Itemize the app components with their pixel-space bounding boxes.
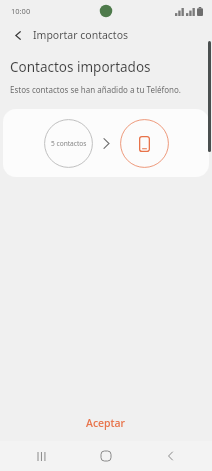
staticText: Estos contactos se han añadido a tu Telé… xyxy=(10,84,181,95)
button[interactable]: 5 contactos xyxy=(3,109,209,177)
button[interactable]: Home xyxy=(84,441,128,471)
staticText: Aceptar xyxy=(86,416,126,430)
button[interactable]: Back xyxy=(148,441,192,471)
staticText: Importar contactos xyxy=(33,28,129,42)
button[interactable]: Aceptar xyxy=(0,405,212,441)
button[interactable]: Recent apps xyxy=(20,441,64,471)
button[interactable]: Back xyxy=(8,25,28,45)
staticText: 5 contactos xyxy=(51,139,87,148)
staticText: 10:00 xyxy=(11,6,31,16)
staticText: Contactos importados xyxy=(10,58,151,76)
